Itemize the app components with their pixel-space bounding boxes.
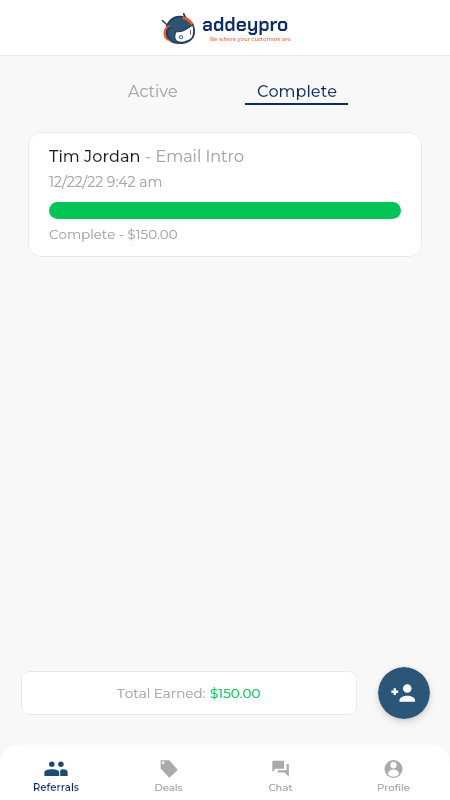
button[interactable]: Active xyxy=(56,76,250,108)
button[interactable]: Profile xyxy=(337,745,450,800)
staticText: $150.00 xyxy=(210,685,261,701)
button[interactable]: Total Earned: xyxy=(21,671,357,715)
staticText: Tim Jordan xyxy=(49,147,141,167)
button[interactable]: Chat xyxy=(224,745,337,800)
button[interactable]: Deals xyxy=(112,745,224,800)
staticText: Total Earned: xyxy=(117,685,210,701)
staticText: Chat xyxy=(268,781,293,793)
staticText: Active xyxy=(128,82,178,102)
button[interactable]: addeypro xyxy=(161,8,289,48)
staticText: - Email Intro xyxy=(141,147,245,167)
staticText: Deals xyxy=(154,781,183,793)
button[interactable]: Referrals xyxy=(0,745,112,800)
staticText: Complete - $150.00 xyxy=(49,226,178,242)
staticText: Be where your customers are. xyxy=(210,36,292,43)
staticText: Complete xyxy=(257,82,338,102)
button[interactable]: Complete xyxy=(200,76,394,108)
staticText: 12/22/22 9:42 am xyxy=(49,173,163,190)
staticText: Referrals xyxy=(33,781,79,793)
staticText: Profile xyxy=(377,781,410,793)
staticText: addeypro xyxy=(202,12,289,37)
button[interactable]: Tim Jordan xyxy=(28,132,422,257)
button[interactable]: Add referral xyxy=(378,667,430,719)
